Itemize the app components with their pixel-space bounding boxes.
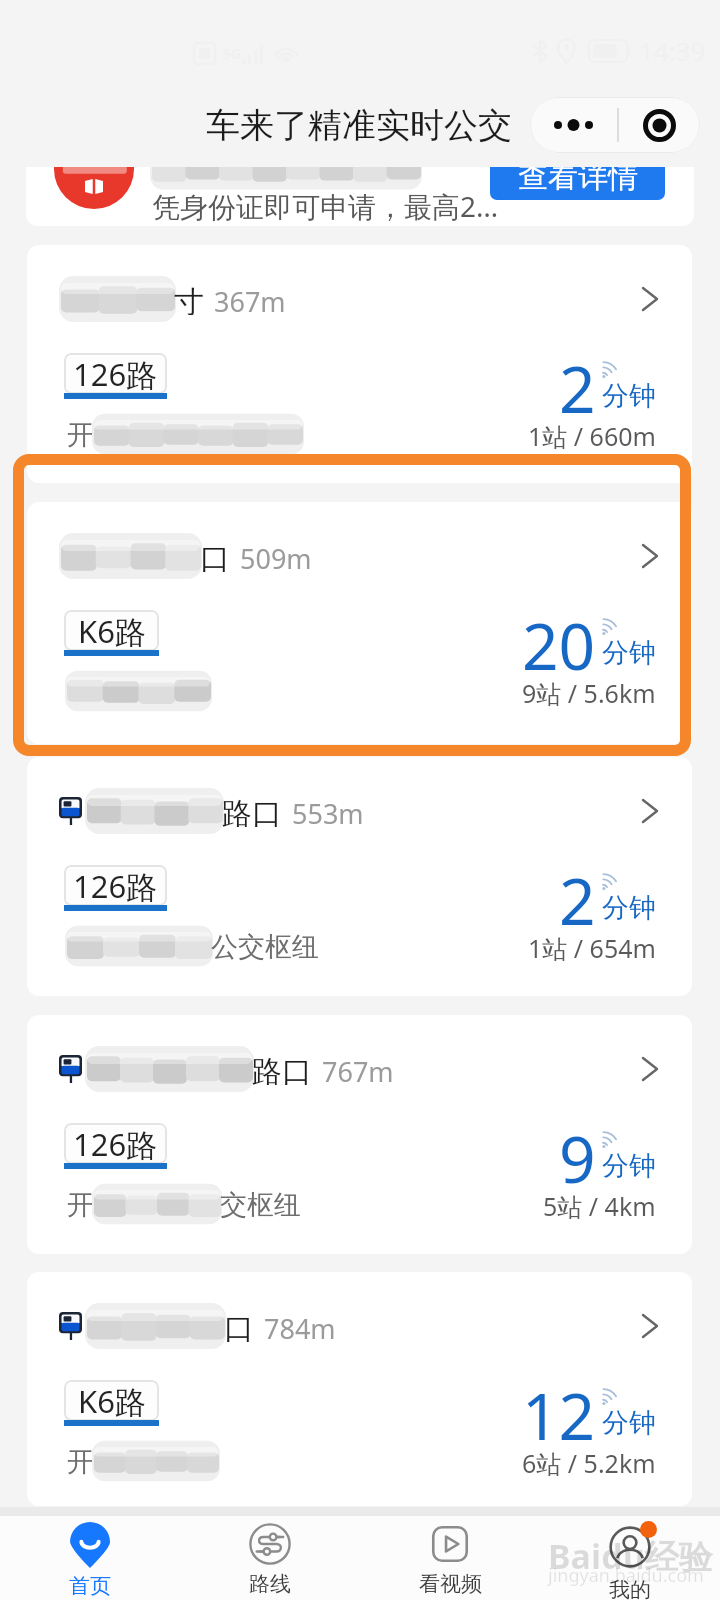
staticText: 2 — [559, 857, 596, 944]
staticText: 我的 — [609, 1577, 651, 1600]
staticText: 767m — [322, 1053, 394, 1085]
staticText: 交枢纽 — [220, 1188, 301, 1220]
staticText: 分钟 — [602, 636, 656, 670]
staticText: 看视频 — [419, 1571, 482, 1597]
staticText: 1站 / 660m — [528, 419, 656, 453]
staticText: 口 — [200, 540, 230, 572]
button[interactable]: 路口 — [27, 757, 692, 996]
button[interactable]: Open station detail — [641, 286, 659, 312]
staticText: 口 — [224, 1310, 254, 1342]
staticText: 分钟 — [602, 379, 656, 413]
staticText: 首页 — [69, 1573, 111, 1599]
staticText: 分钟 — [602, 1406, 656, 1440]
button[interactable]: 凭身份证即可申请，最高2… — [26, 167, 694, 226]
staticText: 分钟 — [602, 891, 656, 925]
staticText: 路口 — [222, 795, 282, 827]
staticText: 553m — [292, 795, 364, 827]
button[interactable]: 口 — [27, 1272, 692, 1506]
staticText: 路线 — [249, 1571, 291, 1597]
staticText: 开 — [67, 1188, 94, 1220]
staticText: K6路 — [78, 1380, 146, 1421]
staticText: 车来了精准实时公交 — [206, 104, 512, 147]
staticText: 784m — [264, 1310, 336, 1342]
button[interactable]: Open station detail — [641, 1056, 659, 1082]
staticText: 公交枢纽 — [211, 930, 319, 962]
button[interactable]: 首页 — [0, 1516, 180, 1600]
button[interactable]: 查看详情 — [490, 167, 665, 200]
button[interactable]: Open station detail — [641, 543, 659, 569]
staticText: 开 — [67, 418, 94, 450]
staticText: jingyan.baidu.com — [548, 1563, 704, 1588]
staticText: 126路 — [73, 1123, 158, 1164]
button[interactable]: 寸 — [27, 245, 692, 483]
staticText: 509m — [240, 540, 312, 572]
staticText: 查看详情 — [518, 167, 638, 196]
staticText: 126路 — [73, 353, 158, 394]
staticText: 开 — [67, 1445, 94, 1477]
staticText: 路口 — [252, 1053, 312, 1085]
staticText: 6站 / 5.2km — [522, 1446, 656, 1480]
staticText: 20 — [522, 602, 596, 689]
staticText: 1站 / 654m — [528, 931, 656, 965]
staticText: 367m — [214, 283, 286, 315]
button[interactable]: 看视频 — [360, 1516, 540, 1600]
button[interactable]: 口 — [27, 502, 692, 744]
staticText: 9 — [559, 1115, 596, 1202]
staticText: 凭身份证即可申请，最高2… — [152, 187, 499, 225]
staticText: 寸 — [174, 283, 204, 315]
button[interactable]: 路口 — [27, 1015, 692, 1254]
staticText: 分钟 — [602, 1149, 656, 1183]
button[interactable]: 路线 — [180, 1516, 360, 1600]
staticText: Baidu经验 — [548, 1533, 713, 1579]
staticText: 9站 / 5.6km — [522, 676, 656, 710]
staticText: 12 — [522, 1372, 596, 1459]
staticText: 5站 / 4km — [543, 1189, 656, 1223]
button[interactable]: 我的 — [540, 1516, 720, 1600]
button[interactable]: Open station detail — [641, 1313, 659, 1339]
staticText: K6路 — [78, 610, 146, 651]
button[interactable]: Open station detail — [641, 798, 659, 824]
staticText: 2 — [559, 345, 596, 432]
button[interactable]: Close mini program — [619, 97, 700, 153]
button[interactable]: More options — [530, 97, 617, 153]
staticText: 126路 — [73, 865, 158, 906]
button[interactable] — [13, 454, 691, 756]
